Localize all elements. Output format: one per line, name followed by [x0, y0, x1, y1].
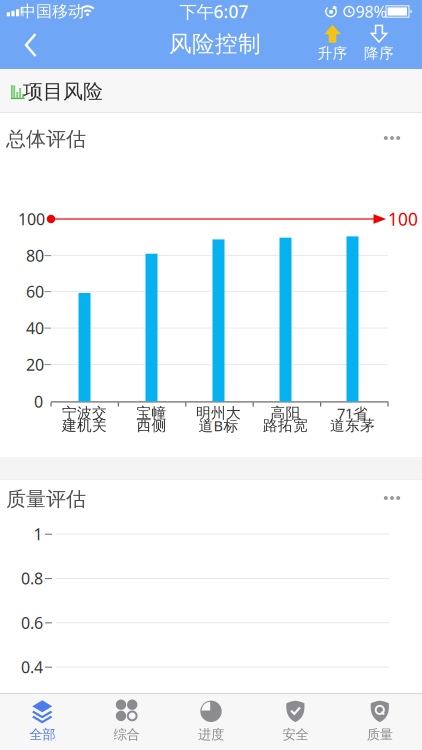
button[interactable]: Back: [12, 23, 48, 67]
staticText: 80: [26, 245, 44, 266]
staticText: 道B标: [198, 416, 238, 435]
staticText: 中国移动: [20, 2, 84, 21]
button[interactable]: 全部: [0, 694, 84, 748]
staticText: 20: [26, 354, 44, 375]
staticText: 综合: [114, 726, 140, 743]
button[interactable]: Sort descending: [357, 23, 401, 63]
staticText: 进度: [198, 726, 224, 743]
button[interactable]: More options: [370, 127, 414, 149]
staticText: 道东茅: [330, 416, 375, 434]
staticText: 40: [26, 317, 44, 339]
staticText: 98%: [355, 1, 386, 22]
staticText: 降序: [364, 44, 394, 62]
button[interactable]: Sort ascending: [310, 23, 354, 63]
staticText: 项目风险: [23, 79, 103, 104]
staticText: 71省: [337, 403, 368, 423]
staticText: 西侧: [136, 416, 166, 434]
staticText: 下午6:07: [179, 0, 248, 23]
staticText: 100: [18, 208, 45, 230]
staticText: 路拓宽: [263, 416, 308, 434]
staticText: 质量评估: [6, 487, 86, 511]
button[interactable]: 安全: [253, 694, 338, 748]
staticText: 1: [33, 523, 42, 545]
staticText: 明州大: [196, 404, 241, 422]
staticText: 全部: [29, 726, 55, 743]
staticText: 60: [26, 281, 44, 302]
staticText: 0: [34, 391, 43, 412]
staticText: 100: [388, 207, 418, 230]
staticText: 宁波交: [62, 404, 107, 422]
staticText: 升序: [317, 44, 347, 62]
button[interactable]: More options: [370, 487, 414, 509]
staticText: 风险控制: [169, 30, 261, 58]
button[interactable]: 进度: [169, 694, 253, 748]
staticText: 0.6: [21, 612, 43, 633]
staticText: 建机关: [62, 416, 107, 434]
staticText: 高阳: [270, 404, 300, 422]
staticText: 安全: [282, 726, 308, 743]
staticText: 质量: [367, 726, 393, 743]
button[interactable]: 综合: [84, 694, 169, 748]
staticText: 0.8: [21, 568, 43, 589]
staticText: 0.4: [21, 656, 43, 678]
button[interactable]: 质量: [338, 694, 422, 748]
staticText: 宝幢: [136, 404, 166, 422]
staticText: 总体评估: [6, 127, 86, 151]
